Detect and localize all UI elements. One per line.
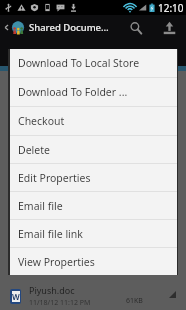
staticText: Shared Docume… <box>29 21 109 34</box>
staticText: Email file <box>18 199 63 213</box>
staticText: 61KB <box>126 296 143 306</box>
staticText: Download To Local Store <box>18 56 140 70</box>
button[interactable]: Email file link <box>10 220 177 247</box>
button[interactable]: Email file <box>10 192 177 219</box>
staticText: W <box>12 291 20 302</box>
button[interactable]: Download To Folder ... <box>10 78 177 106</box>
staticText: View Properties <box>18 255 95 269</box>
staticText: Checkout <box>18 114 65 128</box>
button[interactable]: Download To Local Store <box>10 49 177 77</box>
staticText: Piyush.doc <box>29 284 75 296</box>
button[interactable]: Upload <box>152 15 186 40</box>
staticText: 11/18/12 11:12 PM <box>29 298 91 308</box>
staticText: 12:10 <box>158 1 184 15</box>
button[interactable]: Navigate up <box>0 15 27 40</box>
staticText: Delete <box>18 143 50 157</box>
staticText: Edit Properties <box>18 171 91 185</box>
button[interactable]: Delete <box>10 136 177 163</box>
button[interactable]: W <box>0 284 186 308</box>
button[interactable]: Edit Properties <box>10 164 177 191</box>
staticText: Download To Folder ... <box>18 85 128 99</box>
button[interactable]: View Properties <box>10 248 177 275</box>
staticText: Email file link <box>18 227 83 241</box>
button[interactable]: Checkout <box>10 107 177 135</box>
button[interactable]: Search <box>119 15 152 40</box>
